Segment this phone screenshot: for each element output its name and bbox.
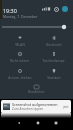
- button[interactable]: Standort: [36, 65, 71, 80]
- staticText: Autom. drehen: [8, 75, 32, 79]
- staticText: jetzt: [63, 105, 69, 109]
- button[interactable]: Screenshot aufgenommen: [1, 100, 71, 113]
- button[interactable]: Nicht stören: [2, 48, 37, 63]
- button[interactable]: Bearbeiten: [25, 82, 48, 95]
- button[interactable]: Einstellungen: [52, 5, 60, 13]
- staticText: Standort: [47, 75, 61, 79]
- staticText: Screenshot aufgenommen: [12, 102, 58, 107]
- button[interactable]: Startbildschirm: [31, 116, 44, 129]
- staticText: WLAN: [15, 42, 25, 46]
- button[interactable]: Helligkeit: [0, 20, 73, 31]
- button[interactable]: WLAN: [2, 32, 37, 47]
- staticText: 19:30: [3, 7, 17, 14]
- button[interactable]: Taschenlampe: [36, 48, 71, 63]
- staticText: Montag, 7. Dezember: [3, 14, 38, 19]
- button[interactable]: Autom. drehen: [2, 65, 37, 80]
- staticText: Bearbeiten: [28, 90, 45, 94]
- button[interactable]: Übersicht: [49, 116, 62, 129]
- button[interactable]: Bluetooth: [36, 32, 71, 47]
- button[interactable]: Nutzerkonto: [61, 5, 69, 13]
- staticText: Nicht stören: [10, 58, 29, 62]
- staticText: Bluetooth: [46, 42, 62, 46]
- staticText: Zum Ansehen tippen: [12, 107, 44, 111]
- button[interactable]: Zurück: [12, 116, 25, 129]
- staticText: Taschenlampe: [42, 58, 65, 62]
